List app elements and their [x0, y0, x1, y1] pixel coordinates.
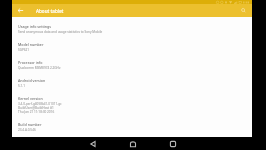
staticText: Qualcomm MSM8974 2.2GHz: [18, 66, 61, 70]
button[interactable]: Back: [81, 137, 104, 150]
button[interactable]: Model number: [12, 42, 252, 60]
button[interactable]: Search: [237, 4, 250, 17]
button[interactable]: Kernel version: [12, 96, 252, 122]
button[interactable]: Home: [121, 137, 144, 150]
button[interactable]: Build number: [12, 122, 252, 137]
button[interactable]: Recent apps: [161, 137, 184, 150]
staticText: Kernel version: [18, 96, 43, 101]
button[interactable]: Navigate up: [12, 4, 28, 17]
staticText: Send anonymous data and usage statistics…: [18, 30, 103, 34]
staticText: Usage info settings: [18, 24, 52, 29]
button[interactable]: Usage info settings: [12, 24, 252, 42]
staticText: Model number: [18, 42, 44, 47]
staticText: Android version: [18, 78, 46, 83]
staticText: 5.1.1: [18, 84, 25, 88]
staticText: SGP621: [18, 48, 30, 52]
button[interactable]: Processor info: [12, 60, 252, 78]
staticText: 23.4.A.0.546: [18, 128, 36, 132]
button[interactable]: Android version: [12, 78, 252, 96]
staticText: Processor info: [18, 60, 43, 65]
staticText: Build number: [18, 122, 42, 127]
staticText: 3.4.0-perf-g4058b41-01011-gc BuildUser@B…: [18, 102, 62, 114]
staticText: About tablet: [36, 8, 64, 14]
